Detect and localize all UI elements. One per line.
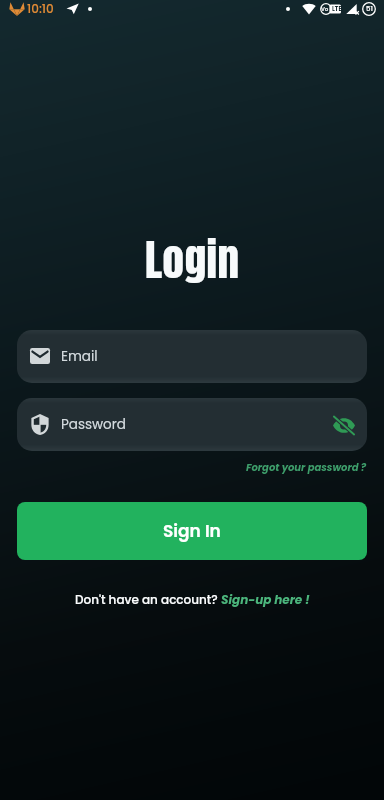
staticText: Sign In [163,519,221,543]
button[interactable]: Sign In [17,502,367,560]
staticText: 51 [366,4,373,14]
button[interactable]: Show password [332,413,356,437]
staticText: Sign-up here ! [221,591,310,608]
button[interactable]: Sign-up here ! [221,591,310,608]
staticText: Don't have an account? [75,591,221,608]
staticText: Vo [321,5,329,13]
staticText: LTE [332,5,342,13]
staticText: 10:10 [27,0,54,17]
staticText: Password [61,415,126,434]
staticText: Login [145,227,240,292]
staticText: Email [61,347,98,366]
button[interactable]: Email [17,330,367,383]
button[interactable]: Password [17,398,367,451]
button[interactable]: Forgot your password ? [246,460,367,474]
staticText: Forgot your password ? [246,460,367,474]
